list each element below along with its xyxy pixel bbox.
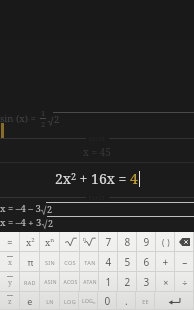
button[interactable]: z [0,292,20,310]
button[interactable]: – [175,252,194,272]
button[interactable]: ÷ [175,272,194,292]
staticText: 8 [124,235,131,249]
staticText: n [83,236,86,242]
staticText: x [8,258,13,268]
button[interactable]: EE [136,292,155,310]
button[interactable]: RAD [20,272,40,292]
staticText: 1 [105,275,112,289]
staticText: 9 [143,235,150,249]
staticText: 2 [54,113,60,126]
button[interactable]: x2 [20,232,40,252]
button[interactable]: n [80,232,99,252]
button[interactable]: TAN [80,252,99,272]
staticText: ATAN [83,279,97,286]
button[interactable]: x [0,252,20,272]
staticText: ACOS [63,279,78,286]
button[interactable]: 3 [137,272,156,292]
staticText: – [182,255,188,269]
staticText: 2 [47,203,53,215]
button[interactable]: 7 [99,232,118,252]
button[interactable]: 2 [118,272,137,292]
button[interactable] [60,232,80,252]
staticText: 1 [41,108,46,118]
staticText: ÷ [182,276,188,288]
staticText: COS [64,259,76,266]
staticText: 0 [104,294,111,308]
staticText: 4 [105,255,112,269]
staticText: x2 [26,236,35,248]
button[interactable]: COS [60,252,80,272]
button[interactable]: ( ) [156,232,175,252]
button[interactable]: 9 [137,232,156,252]
button[interactable]: sin (x) = [0,101,194,135]
staticText: xn [45,236,55,248]
button[interactable]: ASIN [40,272,60,292]
staticText: 7 [105,235,112,249]
button[interactable]: 8 [118,232,137,252]
button[interactable]: e [20,292,40,310]
staticText: 2 [48,217,54,229]
staticText: TAN [84,259,96,266]
staticText: 3 [143,275,150,289]
button[interactable]: + [156,252,175,272]
button[interactable]: 4 [99,252,118,272]
staticText: ( ) [162,237,170,248]
button[interactable]: Backspace [175,232,194,252]
staticText: RAD [24,279,36,286]
staticText: 2 [124,275,131,289]
button[interactable]: x = –4 – 3 [0,201,194,229]
staticText: + [162,255,169,269]
staticText: 5 [124,255,131,269]
button[interactable]: LOGn [79,292,98,310]
button[interactable]: LN [40,292,60,310]
staticText: LOGn [82,297,96,306]
button[interactable]: . [117,292,136,310]
button[interactable]: LOG [60,292,79,310]
button[interactable]: ATAN [80,272,99,292]
staticText: 2x2 + 16x = 4 [55,169,138,188]
staticText: z [8,297,12,307]
staticText: e [27,295,33,307]
staticText: LN [46,298,54,305]
button[interactable]: 1 [99,272,118,292]
staticText: EE [142,298,149,305]
staticText: x = –4 + 3 [0,216,42,229]
button[interactable]: SIN [40,252,60,272]
staticText: SIN [45,259,55,266]
staticText: ASIN [44,279,57,286]
staticText: y [8,278,12,288]
button[interactable]: = [0,232,20,252]
button[interactable]: π [20,252,40,272]
button[interactable]: y [0,272,20,292]
staticText: LOG [64,298,76,305]
button[interactable]: ACOS [60,272,80,292]
staticText: 2 [41,119,46,129]
staticText: × [163,276,169,288]
button[interactable]: 0 [98,292,117,310]
staticText: x = 45 [83,145,111,159]
button[interactable]: Enter [155,292,194,310]
button[interactable]: × [156,272,175,292]
button[interactable]: 6 [137,252,156,272]
button[interactable]: 5 [118,252,137,272]
staticText: sin (x) = [0,112,39,125]
staticText: x = –4 – 3 [0,202,41,215]
staticText: = [7,236,13,248]
staticText: π [27,256,34,268]
staticText: . [125,294,128,308]
button[interactable]: 2x2 + 16x = 4 [0,163,194,194]
button[interactable]: xn [40,232,60,252]
staticText: 6 [143,255,150,269]
